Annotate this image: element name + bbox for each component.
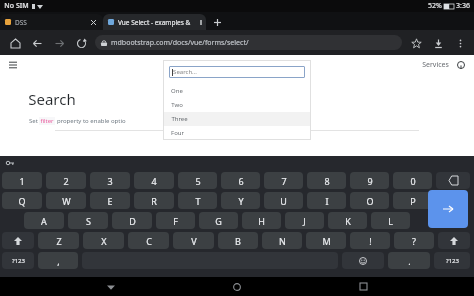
staticText: Q bbox=[18, 195, 26, 207]
staticText: 5 bbox=[195, 175, 201, 187]
button[interactable]: 7 bbox=[264, 172, 303, 189]
button[interactable]: Emoji bbox=[342, 252, 384, 269]
button[interactable]: Bookmark bbox=[405, 32, 427, 54]
button[interactable]: Enter bbox=[428, 190, 468, 228]
staticText: K bbox=[345, 215, 351, 227]
staticText: One bbox=[171, 87, 183, 95]
button[interactable]: V bbox=[173, 232, 214, 249]
button[interactable]: Password bbox=[5, 158, 15, 168]
button[interactable]: Vue Select - examples & tutoria bbox=[103, 14, 206, 30]
button[interactable]: Services bbox=[422, 60, 449, 70]
button[interactable]: ! bbox=[350, 232, 390, 249]
staticText: Vue Select - examples & tutoria bbox=[118, 18, 201, 27]
button[interactable]: R bbox=[134, 192, 174, 209]
staticText: 1 bbox=[19, 175, 25, 187]
staticText: Search bbox=[28, 89, 76, 109]
button[interactable]: C bbox=[128, 232, 169, 249]
button[interactable]: G bbox=[199, 212, 238, 229]
button[interactable]: ?123 bbox=[434, 252, 470, 269]
button[interactable]: B bbox=[218, 232, 258, 249]
button[interactable]: More options bbox=[449, 32, 471, 54]
staticText: 7 bbox=[281, 175, 287, 187]
button[interactable]: Forward bbox=[48, 32, 70, 54]
staticText: M bbox=[322, 235, 331, 247]
staticText: O bbox=[366, 195, 374, 207]
button[interactable]: K bbox=[328, 212, 367, 229]
button[interactable]: 4 bbox=[134, 172, 174, 189]
button[interactable]: E bbox=[90, 192, 130, 209]
staticText: 8 bbox=[324, 175, 330, 187]
button[interactable]: 1 bbox=[2, 172, 42, 189]
button[interactable]: A bbox=[24, 212, 64, 229]
button[interactable]: L bbox=[371, 212, 410, 229]
button[interactable]: Three bbox=[163, 112, 311, 126]
staticText: 6 bbox=[238, 175, 244, 187]
staticText: Y bbox=[238, 195, 244, 207]
button[interactable]: S bbox=[68, 212, 108, 229]
staticText: R bbox=[151, 195, 157, 207]
button[interactable]: Two bbox=[163, 98, 311, 112]
button[interactable]: X bbox=[83, 232, 124, 249]
staticText: J bbox=[303, 215, 306, 227]
button[interactable]: 6 bbox=[221, 172, 260, 189]
staticText: 3:36 bbox=[456, 1, 470, 11]
button[interactable]: Home bbox=[4, 32, 26, 54]
button[interactable]: Download bbox=[427, 32, 449, 54]
button[interactable]: Close tab bbox=[88, 17, 98, 27]
button[interactable]: mdbootstrap.com/docs/vue/forms/select/ bbox=[95, 35, 402, 50]
button[interactable]: J bbox=[285, 212, 324, 229]
button[interactable]: Shift bbox=[2, 232, 34, 249]
button[interactable]: GitHub bbox=[455, 59, 467, 71]
staticText: Two bbox=[171, 101, 183, 109]
button[interactable]: D bbox=[112, 212, 152, 229]
button[interactable]: 2 bbox=[46, 172, 86, 189]
button[interactable]: N bbox=[262, 232, 302, 249]
button[interactable]: F bbox=[156, 212, 195, 229]
button[interactable]: 9 bbox=[350, 172, 389, 189]
button[interactable]: Home bbox=[222, 277, 252, 296]
button[interactable]: DSS bbox=[0, 14, 103, 30]
button[interactable]: Reload bbox=[70, 32, 92, 54]
button[interactable]: P bbox=[393, 192, 432, 209]
staticText: 4 bbox=[151, 175, 157, 187]
button[interactable]: Four bbox=[163, 126, 311, 140]
staticText: No SIM bbox=[4, 1, 29, 11]
staticText: V bbox=[191, 235, 197, 247]
button[interactable]: Back bbox=[96, 277, 126, 296]
button[interactable]: Shift right bbox=[438, 232, 470, 249]
staticText: S bbox=[86, 215, 91, 227]
staticText: 0 bbox=[410, 175, 416, 187]
button[interactable]: U bbox=[264, 192, 303, 209]
button[interactable]: . bbox=[388, 252, 430, 269]
staticText: B bbox=[235, 235, 241, 247]
button[interactable]: Y bbox=[221, 192, 260, 209]
button[interactable]: 8 bbox=[307, 172, 346, 189]
button[interactable]: Search... bbox=[169, 66, 305, 78]
button[interactable]: New tab bbox=[206, 14, 228, 30]
button[interactable]: Menu bbox=[7, 59, 19, 71]
button[interactable]: Z bbox=[38, 232, 79, 249]
button[interactable]: Q bbox=[2, 192, 42, 209]
button[interactable]: M bbox=[306, 232, 346, 249]
button[interactable]: O bbox=[350, 192, 389, 209]
button[interactable]: Backspace bbox=[436, 172, 470, 189]
button[interactable]: W bbox=[46, 192, 86, 209]
button[interactable]: 0 bbox=[393, 172, 432, 189]
staticText: Set bbox=[28, 117, 39, 125]
button[interactable]: 3 bbox=[90, 172, 130, 189]
button[interactable]: I bbox=[307, 192, 346, 209]
button[interactable]: , bbox=[38, 252, 78, 269]
button[interactable]: Recent apps bbox=[348, 277, 378, 296]
button[interactable]: T bbox=[178, 192, 217, 209]
button[interactable]: Back bbox=[26, 32, 48, 54]
button[interactable]: ? bbox=[394, 232, 434, 249]
staticText: Z bbox=[56, 235, 62, 247]
button[interactable]: 5 bbox=[178, 172, 217, 189]
button[interactable]: One bbox=[163, 84, 311, 98]
staticText: I bbox=[325, 195, 329, 207]
staticText: D bbox=[129, 215, 136, 227]
staticText: DSS bbox=[15, 18, 27, 27]
button[interactable]: H bbox=[242, 212, 281, 229]
button[interactable]: ?123 bbox=[2, 252, 34, 269]
